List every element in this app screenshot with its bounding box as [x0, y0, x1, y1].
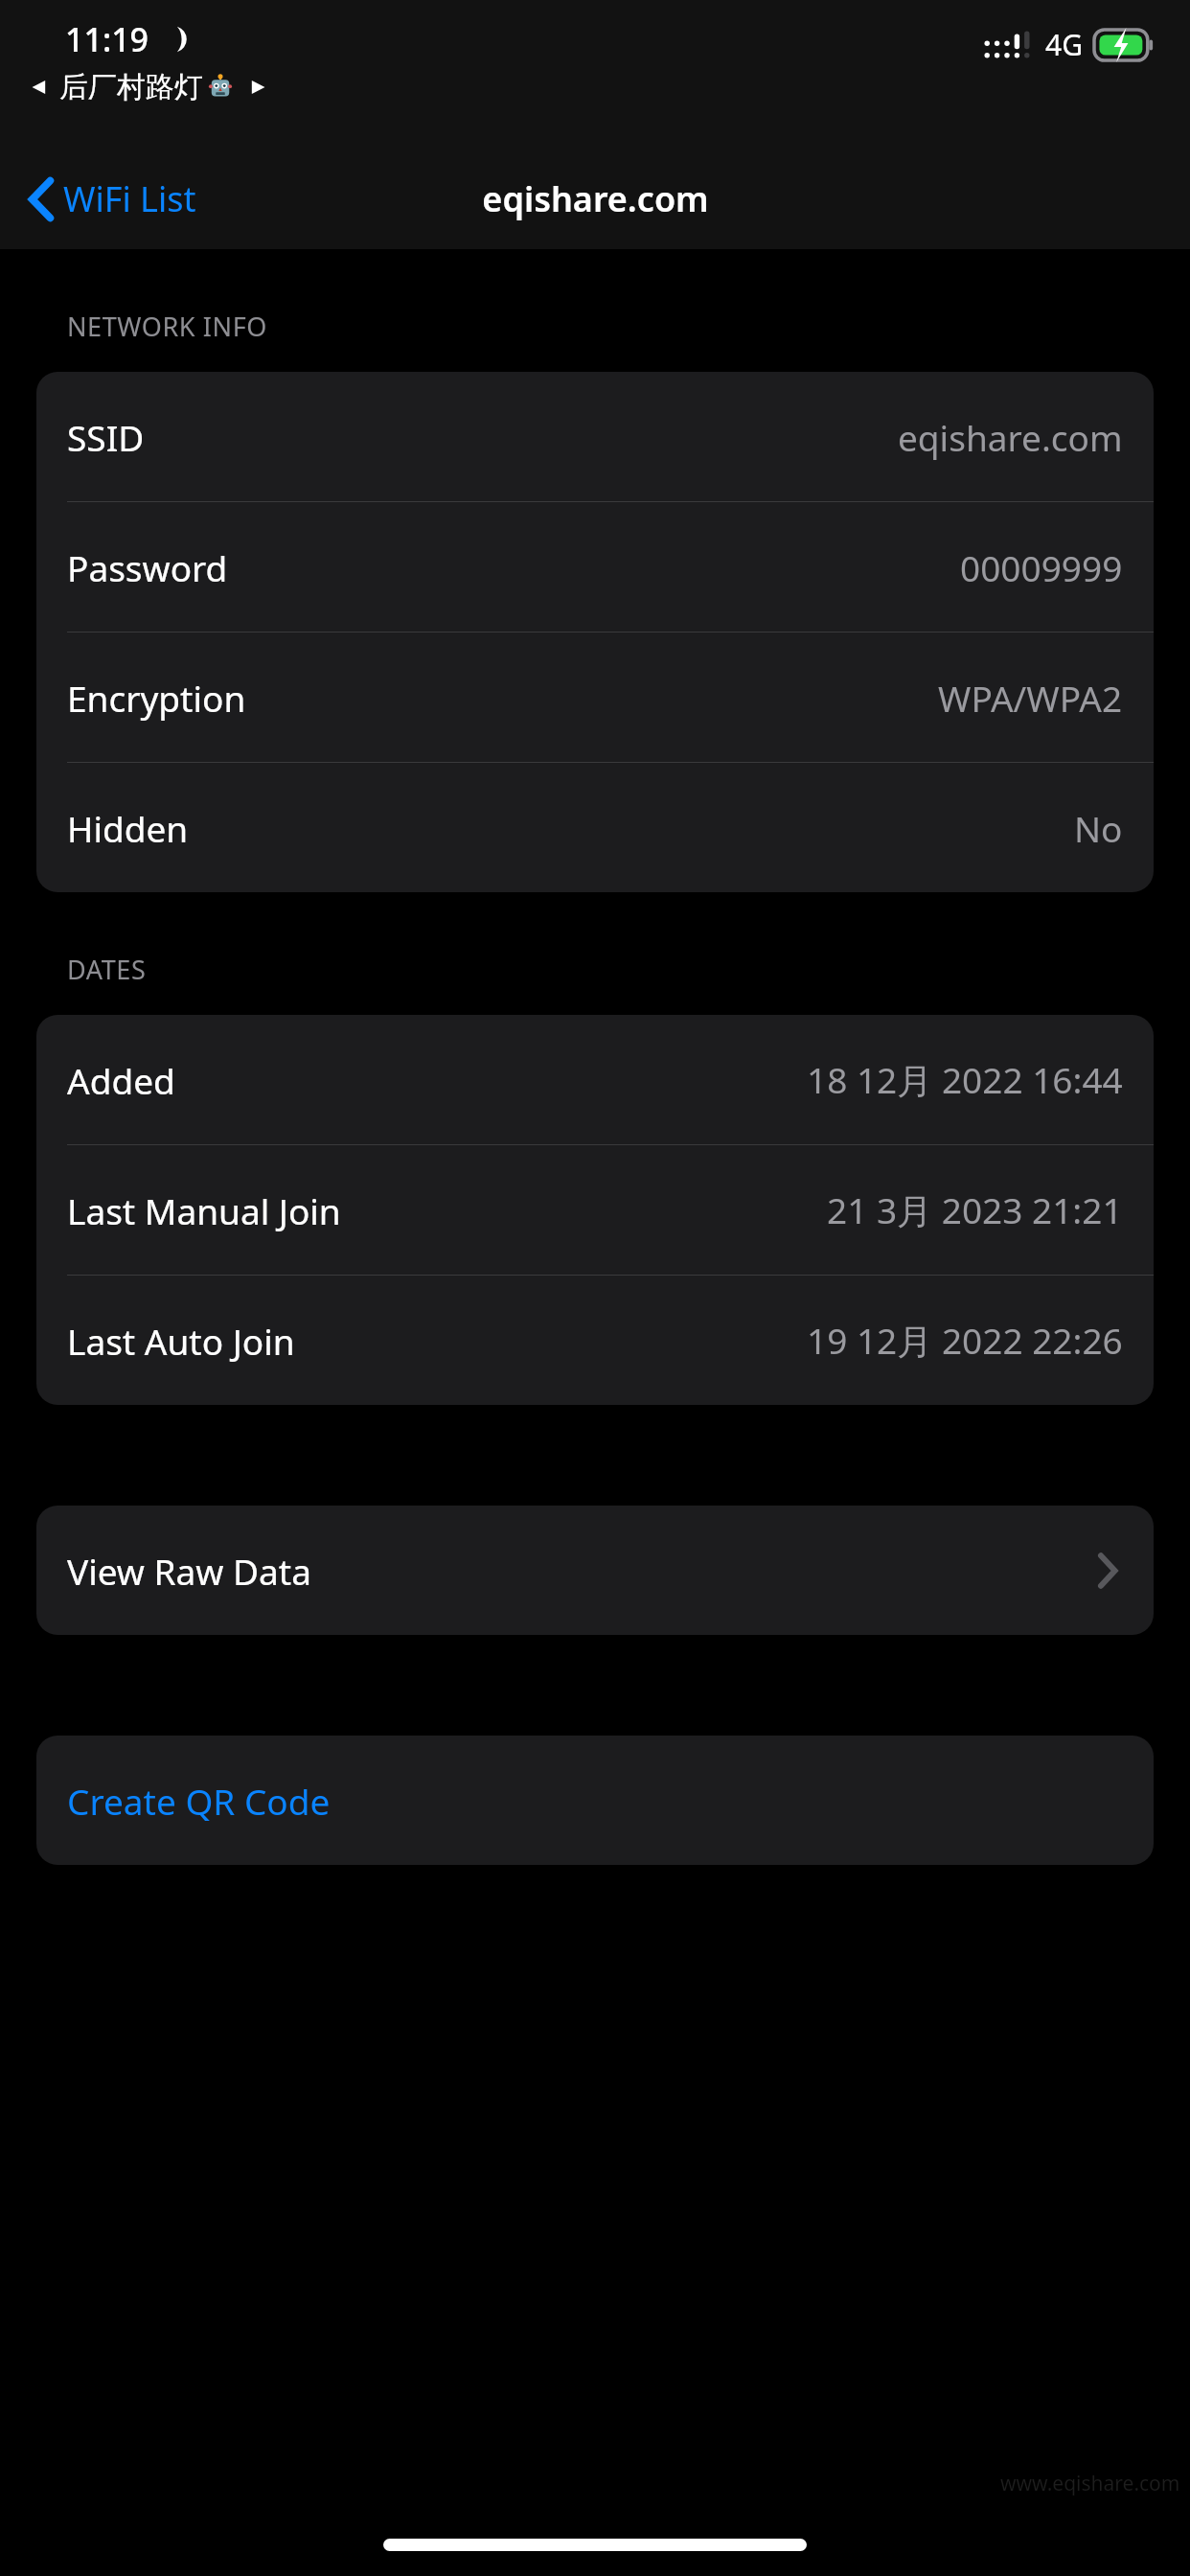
staticText: www.eqishare.com	[1000, 2470, 1180, 2497]
button[interactable]: Password	[36, 502, 1154, 632]
staticText: 18 12月 2022 16:44	[807, 1055, 1123, 1104]
button[interactable]: Last Manual Join	[36, 1145, 1154, 1275]
staticText: 后厂村路灯	[59, 69, 203, 105]
staticText: View Raw Data	[67, 1547, 311, 1595]
button[interactable]: WiFi List	[0, 166, 216, 232]
staticText: Create QR Code	[67, 1777, 331, 1825]
staticText: NETWORK INFO	[67, 309, 267, 344]
staticText: Last Auto Join	[67, 1317, 295, 1365]
staticText: 00009999	[960, 543, 1123, 591]
staticText: 21 3月 2023 21:21	[827, 1185, 1123, 1234]
staticText: SSID	[67, 413, 145, 461]
staticText: Last Manual Join	[67, 1186, 341, 1234]
staticText: DATES	[67, 952, 147, 987]
staticText: eqishare.com	[482, 175, 709, 222]
staticText: Hidden	[67, 804, 189, 852]
button[interactable]: SSID	[36, 372, 1154, 501]
staticText: 11:19	[65, 17, 149, 61]
staticText: WiFi List	[63, 175, 196, 222]
staticText: Password	[67, 543, 228, 591]
button[interactable]: Last Auto Join	[36, 1276, 1154, 1405]
staticText: Added	[67, 1056, 175, 1104]
button[interactable]: View Raw Data	[36, 1506, 1154, 1635]
button[interactable]: Added	[36, 1015, 1154, 1144]
staticText: WPA/WPA2	[938, 674, 1123, 722]
other: View Raw Data	[1098, 1553, 1117, 1588]
staticText: eqishare.com	[898, 413, 1123, 461]
staticText: Encryption	[67, 674, 246, 722]
button[interactable]: Hidden	[36, 763, 1154, 892]
button[interactable]: Create QR Code	[36, 1736, 1154, 1865]
button[interactable]: Encryption	[36, 632, 1154, 762]
staticText: No	[1074, 804, 1123, 852]
staticText: 19 12月 2022 22:26	[807, 1316, 1123, 1365]
staticText: 4G	[1045, 25, 1083, 64]
